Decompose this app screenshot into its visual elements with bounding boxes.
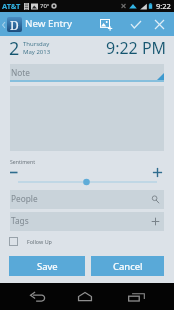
button[interactable]: 9:22 PM <box>106 37 167 59</box>
button[interactable]: Decrease sentiment <box>7 166 21 179</box>
button[interactable]: Save entry <box>124 12 148 36</box>
button[interactable]: Recent apps <box>116 283 156 310</box>
staticText: May 2013 <box>23 48 51 56</box>
button[interactable]: Add photo <box>94 12 118 36</box>
staticText: 9:22 <box>156 1 171 11</box>
staticText: D <box>10 17 19 32</box>
staticText: New Entry <box>25 17 73 30</box>
button[interactable]: Tags <box>10 212 164 231</box>
button[interactable]: Save <box>9 256 85 276</box>
button[interactable]: Sentiment slider <box>10 176 164 188</box>
button[interactable]: Increase sentiment <box>151 166 164 179</box>
button[interactable]: Note <box>10 64 164 82</box>
staticText: Cancel <box>113 260 143 273</box>
button[interactable]: 2 <box>9 36 51 61</box>
button[interactable]: D <box>0 17 73 32</box>
button[interactable]: Cancel <box>91 256 164 276</box>
staticText: Save <box>37 260 58 273</box>
button[interactable]: Back <box>18 283 58 310</box>
staticText: Tags <box>11 215 29 226</box>
staticText: 2 <box>9 36 20 61</box>
staticText: Note <box>11 67 31 78</box>
button[interactable]: People <box>10 190 164 209</box>
staticText: People <box>11 193 38 204</box>
staticText: 70° <box>40 2 50 10</box>
staticText: Thursday <box>23 40 50 48</box>
staticText: AT&T <box>2 1 21 11</box>
staticText: Sentiment <box>10 158 36 165</box>
button[interactable]: Home <box>65 283 105 310</box>
staticText: Follow Up <box>27 238 52 245</box>
button[interactable]: Follow Up <box>9 234 52 248</box>
button[interactable]: Cancel <box>147 12 171 36</box>
